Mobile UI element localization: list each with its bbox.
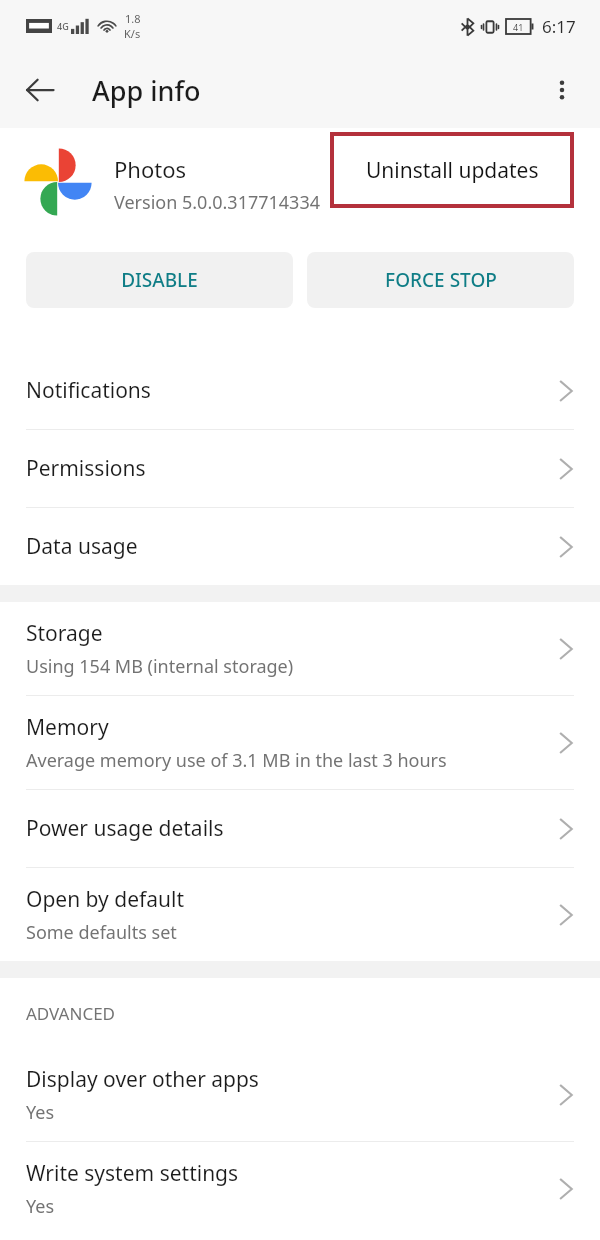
staticText: Yes [26,1194,55,1219]
button[interactable]: Open by default [0,868,600,961]
button[interactable]: Notifications [0,352,600,429]
staticText: FORCE STOP [385,267,497,293]
staticText: DISABLE [121,267,198,293]
staticText: ADVANCED [26,1002,116,1025]
button[interactable]: More options [534,62,590,118]
button[interactable]: Memory [0,696,600,789]
staticText: Power usage details [26,814,224,843]
staticText: 6:17 [542,15,576,38]
staticText: App info [92,72,201,109]
staticText: Uninstall updates [366,156,539,185]
button[interactable]: FORCE STOP [307,252,574,308]
button[interactable]: DISABLE [26,252,293,308]
staticText: Notifications [26,376,151,405]
staticText: Memory [26,713,109,742]
staticText: Yes [26,1100,55,1125]
staticText: Open by default [26,885,185,914]
staticText: 4G [57,20,69,32]
staticText: Average memory use of 3.1 MB in the last… [26,748,447,773]
staticText: Permissions [26,454,146,483]
button[interactable]: Display over other apps [0,1048,600,1141]
button[interactable]: Permissions [0,430,600,507]
staticText: Display over other apps [26,1065,259,1094]
staticText: Using 154 MB (internal storage) [26,654,294,679]
staticText: 1.8 [125,11,141,26]
staticText: Write system settings [26,1159,239,1188]
button[interactable]: Data usage [0,508,600,585]
button[interactable]: Write system settings [0,1142,600,1235]
staticText: Version 5.0.0.317714334 [114,190,321,215]
staticText: K/s [124,26,141,41]
staticText: Photos [114,154,187,184]
button[interactable]: Back [12,62,68,118]
staticText: 41 [513,21,524,33]
staticText: Storage [26,619,103,648]
button[interactable]: Storage [0,602,600,695]
staticText: Some defaults set [26,920,177,945]
button[interactable]: Power usage details [0,790,600,867]
staticText: Data usage [26,532,138,561]
